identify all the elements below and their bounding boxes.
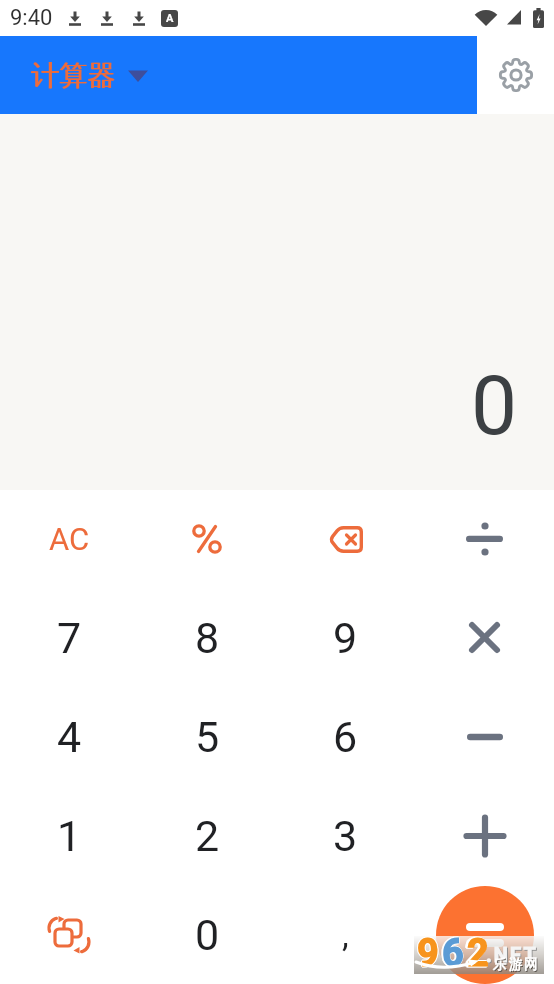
button[interactable] bbox=[0, 885, 138, 984]
staticText: 9 bbox=[417, 931, 439, 969]
button[interactable] bbox=[415, 490, 554, 588]
button[interactable] bbox=[415, 786, 554, 885]
staticText: 9 bbox=[333, 613, 358, 663]
staticText: 8 bbox=[195, 613, 220, 663]
staticText: .NET bbox=[487, 944, 539, 967]
staticText: 2 bbox=[195, 811, 220, 861]
button[interactable]: 7 bbox=[0, 588, 138, 687]
staticText: A bbox=[166, 12, 174, 25]
button[interactable]: 0 bbox=[138, 885, 276, 984]
button[interactable]: , bbox=[276, 885, 415, 984]
staticText: 乐游网 bbox=[494, 957, 541, 974]
staticText: 962 bbox=[418, 931, 491, 969]
staticText: 6 bbox=[442, 931, 464, 969]
staticText: AC bbox=[49, 521, 90, 557]
staticText: 乐游网 bbox=[493, 956, 540, 973]
button[interactable]: 5 bbox=[138, 687, 276, 786]
staticText: 9:40 bbox=[10, 5, 53, 31]
staticText: 2 bbox=[467, 931, 489, 969]
button[interactable]: 2 bbox=[138, 786, 276, 885]
staticText: .NET bbox=[486, 943, 538, 966]
button[interactable]: 计算器 bbox=[0, 36, 477, 114]
button[interactable] bbox=[415, 588, 554, 687]
button[interactable]: 9 bbox=[276, 588, 415, 687]
button[interactable] bbox=[138, 490, 276, 588]
button[interactable]: 1 bbox=[0, 786, 138, 885]
staticText: 1 bbox=[57, 811, 82, 861]
staticText: 7 bbox=[57, 613, 82, 663]
button[interactable] bbox=[276, 490, 415, 588]
button[interactable]: AC bbox=[0, 490, 138, 588]
button[interactable]: 3 bbox=[276, 786, 415, 885]
staticText: 0 bbox=[471, 358, 518, 454]
button[interactable] bbox=[436, 886, 534, 984]
button[interactable] bbox=[477, 36, 554, 114]
button[interactable] bbox=[415, 885, 554, 984]
staticText: 5 bbox=[195, 712, 220, 762]
button[interactable] bbox=[415, 687, 554, 786]
staticText: 962 bbox=[416, 931, 489, 969]
staticText: , bbox=[342, 915, 349, 955]
staticText: 0 bbox=[195, 910, 220, 960]
staticText: 计算器 bbox=[32, 58, 116, 93]
staticText: 4 bbox=[57, 712, 82, 762]
button[interactable]: 6 bbox=[276, 687, 415, 786]
button[interactable]: 4 bbox=[0, 687, 138, 786]
staticText: 962 bbox=[417, 930, 490, 968]
staticText: 计算器 bbox=[31, 58, 115, 93]
staticText: 3 bbox=[333, 811, 358, 861]
staticText: 6 bbox=[333, 712, 358, 762]
staticText: 962 bbox=[417, 932, 490, 970]
button[interactable]: 8 bbox=[138, 588, 276, 687]
